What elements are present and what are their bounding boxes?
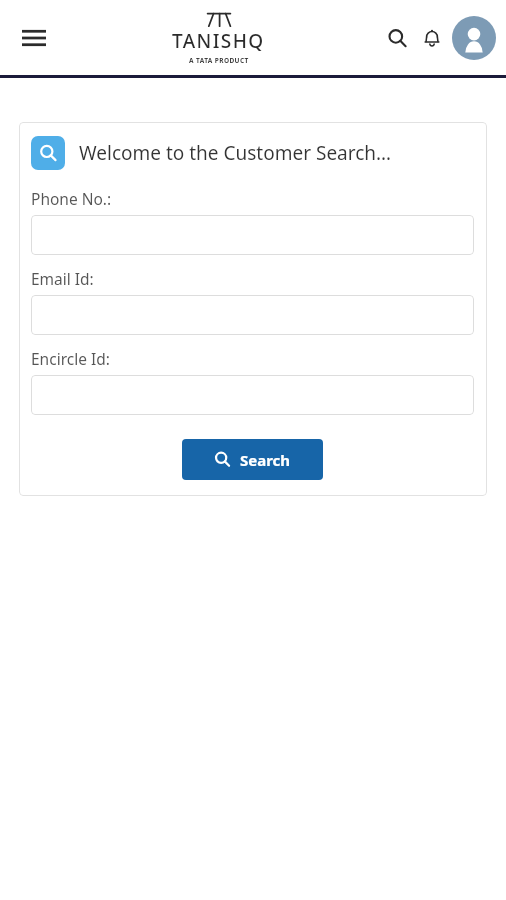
staticText: Email Id: xyxy=(31,268,94,289)
staticText: TANISHQ xyxy=(172,28,265,54)
button[interactable]: Search xyxy=(380,21,414,55)
button[interactable] xyxy=(31,295,474,335)
staticText: Encircle Id: xyxy=(31,348,110,369)
button[interactable] xyxy=(31,215,474,255)
staticText: Phone No.: xyxy=(31,188,112,209)
button[interactable] xyxy=(31,375,474,415)
staticText: Search xyxy=(240,450,291,470)
button[interactable]: Menu xyxy=(10,14,58,62)
button[interactable]: Account xyxy=(452,16,496,60)
staticText: A TATA PRODUCT xyxy=(189,56,249,65)
button[interactable]: Search xyxy=(182,439,323,480)
staticText: Welcome to the Customer Search… xyxy=(79,140,392,166)
button[interactable]: Notifications xyxy=(416,22,448,54)
